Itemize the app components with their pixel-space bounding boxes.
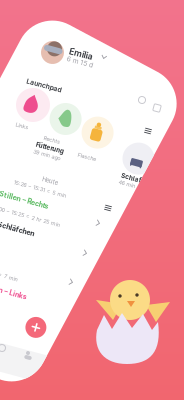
staticText: 15:26 – 15:31 = 5 min	[13, 186, 67, 192]
staticText: Schläfchen	[0, 225, 35, 233]
staticText: Launchpad	[26, 81, 62, 90]
staticText: = 7 min	[0, 274, 18, 280]
staticText: Fütterung	[35, 144, 64, 152]
staticText: 6 m 15 d	[66, 58, 93, 66]
staticText: Stillen – Rechts	[0, 196, 49, 204]
staticText: Schlaf	[121, 174, 141, 182]
staticText: 39 min ago	[33, 152, 61, 158]
staticText: Rechts	[43, 137, 60, 143]
staticText: Emilia	[69, 49, 93, 59]
staticText: Stillen – Links	[0, 287, 27, 295]
staticText: Heute	[42, 177, 58, 185]
staticText: Links	[15, 123, 28, 129]
staticText: 46 min	[118, 181, 135, 187]
staticText: 13:00 – 15:25 = 2 hr 25 min	[0, 213, 61, 219]
staticText: Flasche	[77, 154, 96, 160]
